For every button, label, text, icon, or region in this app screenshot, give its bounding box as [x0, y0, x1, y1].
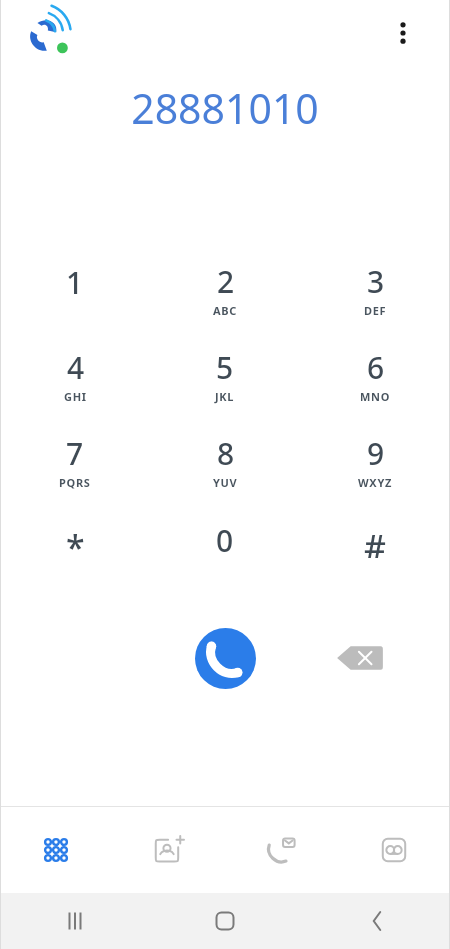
- staticText: 0: [216, 520, 234, 561]
- staticText: 9: [367, 433, 385, 474]
- button[interactable]: Backspace: [334, 637, 386, 679]
- button[interactable]: #: [300, 504, 450, 590]
- button[interactable]: 1: [0, 246, 150, 332]
- button[interactable]: Message call: [224, 807, 337, 893]
- staticText: 8: [217, 433, 235, 474]
- button[interactable]: *: [0, 504, 150, 590]
- staticText: 2: [217, 261, 235, 302]
- staticText: YUV: [213, 475, 238, 490]
- button[interactable]: Add contact: [112, 807, 224, 893]
- button[interactable]: 7: [0, 418, 150, 504]
- staticText: 7: [66, 433, 84, 474]
- button[interactable]: Call: [195, 628, 256, 689]
- button[interactable]: 2: [150, 246, 300, 332]
- staticText: GHI: [64, 389, 87, 404]
- staticText: 1: [66, 262, 84, 303]
- staticText: 5: [216, 347, 234, 388]
- button[interactable]: 4: [0, 332, 150, 418]
- button[interactable]: 8: [150, 418, 300, 504]
- staticText: 4: [67, 347, 85, 388]
- staticText: *: [66, 524, 85, 558]
- button[interactable]: More options: [382, 12, 424, 54]
- staticText: ABC: [213, 303, 238, 318]
- staticText: WXYZ: [358, 475, 393, 490]
- staticText: 6: [367, 347, 385, 388]
- staticText: 28881010: [131, 80, 319, 136]
- button[interactable]: 3: [300, 246, 450, 332]
- staticText: PQRS: [59, 475, 91, 490]
- button[interactable]: 0: [150, 504, 300, 590]
- staticText: JKL: [215, 389, 235, 404]
- button[interactable]: 5: [150, 332, 300, 418]
- staticText: DEF: [364, 303, 387, 318]
- button[interactable]: Voicemail: [337, 807, 450, 893]
- staticText: 3: [367, 261, 385, 302]
- button[interactable]: Wi-Fi calling: [26, 12, 78, 58]
- staticText: MNO: [360, 389, 391, 404]
- button[interactable]: Dial pad: [0, 807, 112, 893]
- button[interactable]: 9: [300, 418, 450, 504]
- staticText: #: [364, 524, 386, 558]
- button[interactable]: 6: [300, 332, 450, 418]
